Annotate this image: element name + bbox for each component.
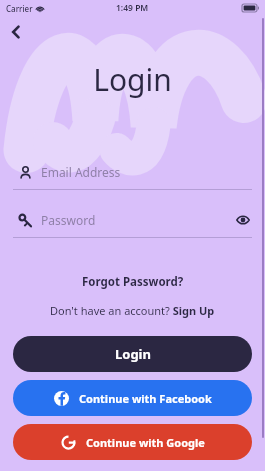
staticText: Password	[41, 212, 96, 228]
staticText: Carrier	[6, 3, 33, 14]
button[interactable]: Forgot Password?	[0, 274, 265, 290]
button[interactable]: Email Address	[13, 162, 252, 190]
staticText: Forgot Password?	[82, 274, 184, 290]
staticText: 1:49 PM	[116, 2, 149, 14]
button[interactable]: Continue with Facebook	[13, 380, 252, 416]
button[interactable]: Continue with Google	[13, 424, 252, 460]
button[interactable]: Don't have an account? Sign Up	[0, 303, 265, 318]
button[interactable]: Show password	[234, 211, 252, 229]
button[interactable]: Back	[3, 19, 29, 45]
staticText: Email Address	[41, 164, 121, 180]
staticText: Continue with Google	[86, 435, 205, 450]
button[interactable]: Login	[13, 336, 252, 372]
staticText: Continue with Facebook	[79, 391, 212, 406]
staticText: Don't have an account? Sign Up	[50, 303, 215, 318]
staticText: Login	[115, 345, 151, 363]
staticText: Login	[0, 59, 265, 100]
button[interactable]: Password	[13, 210, 252, 238]
